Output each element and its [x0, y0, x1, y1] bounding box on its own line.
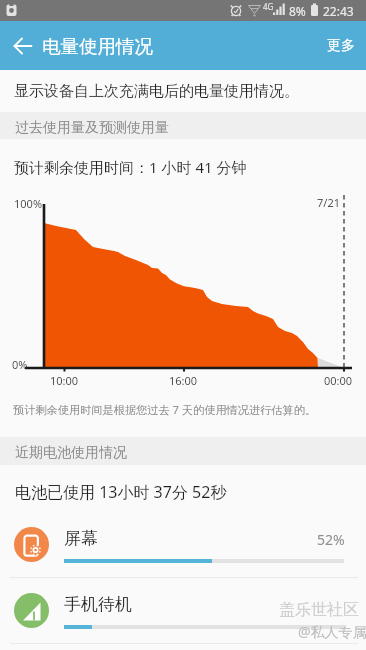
staticText: 显示设备自上次充满电后的电量使用情况。	[14, 82, 299, 101]
staticText: 22:43	[323, 3, 354, 19]
staticText: 52%	[317, 530, 345, 549]
staticText: 过去使用量及预测使用量	[15, 119, 169, 137]
button[interactable]: Back	[5, 28, 41, 64]
staticText: 电量使用情况	[42, 35, 153, 58]
staticText: 00:00	[324, 373, 353, 388]
button[interactable]: 屏幕	[0, 514, 366, 579]
button[interactable]: 手机待机	[0, 580, 366, 645]
staticText: 4G	[263, 1, 274, 12]
staticText: 0%	[12, 357, 28, 372]
staticText: 近期电池使用情况	[15, 444, 127, 462]
staticText: 预计剩余使用时间：1 小时 41 分钟	[14, 157, 247, 177]
staticText: 电池已使用 13小时 37分 52秒	[15, 481, 227, 503]
staticText: 8%	[289, 3, 306, 19]
staticText: 手机待机	[64, 594, 132, 615]
staticText: 10:00	[50, 373, 79, 388]
staticText: 盖乐世社区	[279, 600, 359, 620]
staticText: 100%	[14, 196, 43, 211]
staticText: 屏幕	[64, 528, 98, 549]
staticText: 预计剩余使用时间是根据您过去 7 天的使用情况进行估算的。	[13, 402, 317, 417]
button[interactable]: 更多	[313, 25, 366, 67]
staticText: 16:00	[169, 373, 198, 388]
staticText: 7/21	[317, 195, 340, 210]
staticText: 更多	[327, 37, 355, 55]
staticText: @私人专属	[298, 622, 366, 641]
